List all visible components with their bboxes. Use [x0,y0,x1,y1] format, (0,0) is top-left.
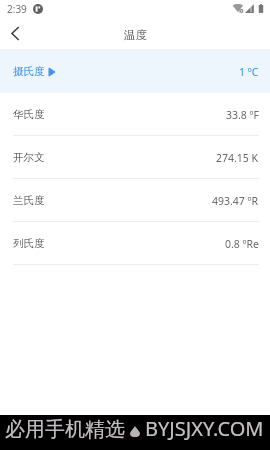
staticText: 493.47 ºR [212,194,259,208]
staticText: 33.8 ºF [226,108,259,122]
staticText: 0.8 ºRe [225,237,259,251]
button[interactable]: Back [0,22,30,49]
staticText: 必用手机精选 [5,417,125,442]
staticText: BYJSJXY.COM [145,415,264,442]
staticText: 274.15 K [216,151,259,165]
button[interactable]: 兰氏度 [0,179,270,222]
staticText: 2:39 [7,2,27,16]
staticText: 开尔文 [13,151,45,164]
staticText: 兰氏度 [13,194,45,207]
button[interactable]: 开尔文 [0,136,270,179]
staticText: 1 ºC [239,65,259,79]
button[interactable]: 列氏度 [0,222,270,265]
staticText: 温度 [124,28,147,42]
button[interactable]: 华氏度 [0,93,270,136]
staticText: 摄氏度 [13,65,45,78]
staticText: 华氏度 [13,108,45,121]
button[interactable]: 摄氏度 [0,50,270,93]
staticText: 列氏度 [13,237,45,250]
